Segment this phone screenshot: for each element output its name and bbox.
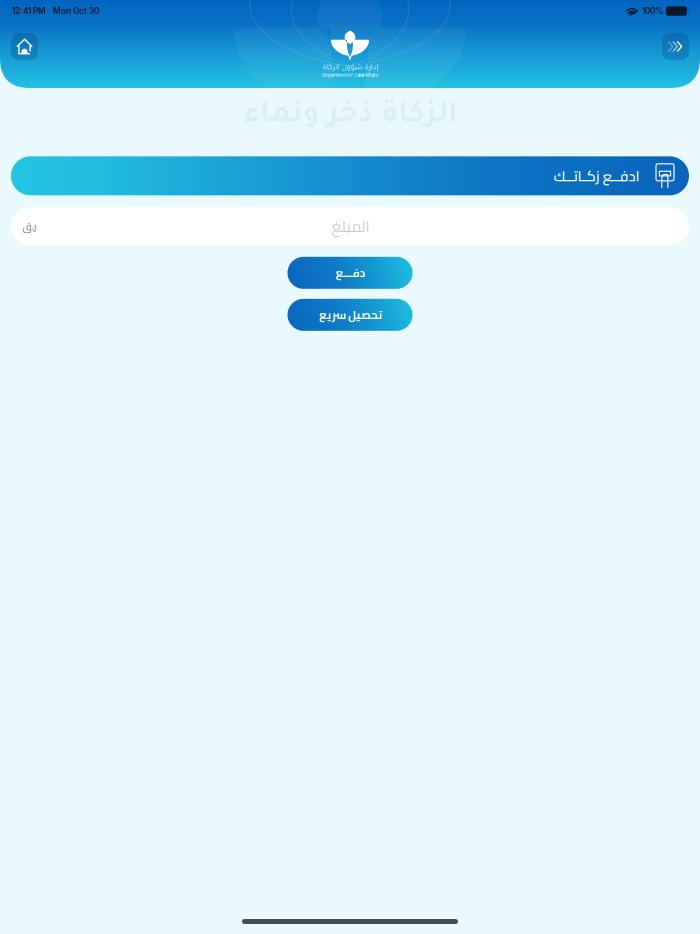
button[interactable]: دفـــع bbox=[287, 257, 412, 289]
button[interactable]: Home bbox=[11, 33, 38, 60]
button[interactable]: ادفــع زكـاتــك bbox=[0, 156, 700, 195]
staticText: إدارة شؤون الزكاة bbox=[322, 64, 378, 72]
button[interactable]: ر.ق bbox=[0, 207, 700, 245]
staticText: دفـــع bbox=[335, 262, 365, 283]
button[interactable]: تحصيل سريع bbox=[287, 299, 412, 331]
staticText: ر.ق bbox=[22, 216, 36, 236]
staticText: ادفــع زكـاتــك bbox=[553, 162, 639, 190]
staticText: تحصيل سريع bbox=[318, 304, 381, 325]
button[interactable]: Next bbox=[662, 33, 689, 60]
staticText: Department of Zakat Affairs bbox=[322, 73, 378, 78]
staticText: الزكاة ذخر ونماء bbox=[242, 101, 457, 132]
staticText: 100% bbox=[642, 6, 663, 16]
staticText: Mon Oct 30 bbox=[53, 6, 99, 16]
staticText: 12:41 PM bbox=[12, 6, 46, 16]
staticText: المبلغ bbox=[331, 212, 369, 241]
